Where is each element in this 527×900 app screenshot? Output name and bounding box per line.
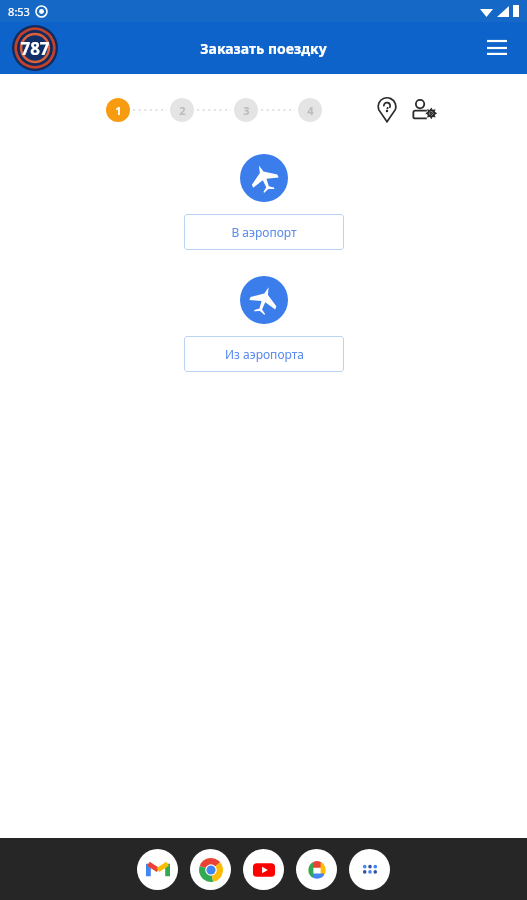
button[interactable]: 1 <box>106 98 130 122</box>
button[interactable]: Logo 787 <box>12 25 58 71</box>
staticText: 1 <box>115 103 122 118</box>
button[interactable]: Gmail <box>137 849 178 890</box>
button[interactable]: Account settings <box>407 93 441 127</box>
button[interactable]: 3 <box>234 98 258 122</box>
button[interactable]: Из аэропорта <box>240 276 288 324</box>
button[interactable]: Help location <box>371 94 403 126</box>
button[interactable]: Из аэропорта <box>184 336 344 372</box>
button[interactable]: YouTube <box>243 849 284 890</box>
staticText: Заказать поездку <box>200 39 327 58</box>
button[interactable]: All apps <box>349 849 390 890</box>
button[interactable]: В аэропорт <box>184 214 344 250</box>
staticText: В аэропорт <box>231 224 297 240</box>
staticText: 787 <box>20 37 50 60</box>
button[interactable]: 2 <box>170 98 194 122</box>
staticText: 4 <box>307 103 314 118</box>
button[interactable]: 4 <box>298 98 322 122</box>
button[interactable]: Photos <box>296 849 337 890</box>
button[interactable]: В аэропорт <box>240 154 288 202</box>
button[interactable]: Chrome <box>190 849 231 890</box>
staticText: 2 <box>179 103 186 118</box>
staticText: 3 <box>243 103 250 118</box>
staticText: Из аэропорта <box>225 346 304 362</box>
button[interactable]: Menu <box>477 28 517 68</box>
staticText: 8:53 <box>8 4 30 19</box>
